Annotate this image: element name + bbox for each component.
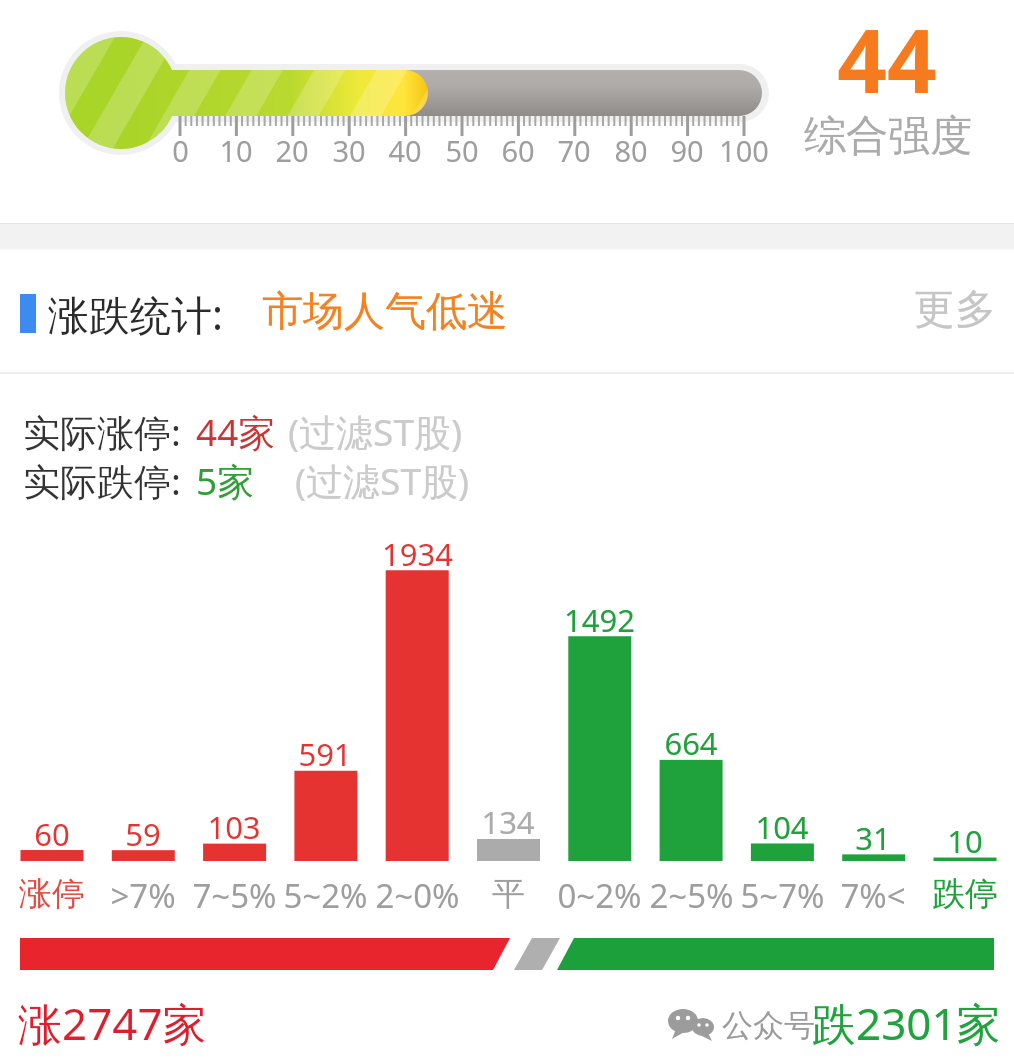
staticText: 70 bbox=[557, 131, 591, 170]
staticText: 5~2% bbox=[283, 873, 368, 918]
staticText: 591 bbox=[298, 733, 352, 775]
staticText: 涨跌统计: bbox=[48, 286, 223, 342]
button[interactable]: 更多 bbox=[905, 280, 1005, 340]
staticText: 更多 bbox=[914, 284, 996, 336]
staticText: 40 bbox=[388, 131, 422, 170]
staticText: 104 bbox=[755, 806, 809, 848]
staticText: 10 bbox=[947, 820, 983, 862]
staticText: (过滤ST股) bbox=[295, 455, 470, 506]
staticText: (过滤ST股) bbox=[288, 406, 463, 457]
staticText: 0 bbox=[172, 131, 189, 170]
staticText: 50 bbox=[445, 131, 479, 170]
staticText: 实际涨停: bbox=[23, 406, 181, 457]
staticText: 30 bbox=[332, 131, 366, 170]
button[interactable] bbox=[807, 8, 967, 218]
staticText: 0~2% bbox=[557, 873, 642, 918]
staticText: 综合强度 bbox=[804, 110, 972, 163]
staticText: 7~5% bbox=[192, 873, 277, 918]
staticText: 涨停 bbox=[19, 873, 85, 915]
staticText: 44 bbox=[837, 0, 937, 118]
staticText: 1934 bbox=[382, 533, 453, 575]
button[interactable] bbox=[0, 285, 900, 340]
staticText: 2~5% bbox=[649, 873, 734, 918]
staticText: 20 bbox=[275, 131, 309, 170]
staticText: 60 bbox=[501, 131, 535, 170]
staticText: 2~0% bbox=[375, 873, 460, 918]
staticText: 100 bbox=[719, 131, 769, 170]
staticText: 10 bbox=[219, 131, 253, 170]
staticText: 80 bbox=[614, 131, 648, 170]
staticText: 跌停 bbox=[932, 873, 998, 915]
staticText: 公众号 bbox=[722, 1006, 815, 1045]
staticText: 134 bbox=[481, 801, 535, 843]
staticText: 涨2747家 bbox=[18, 993, 207, 1053]
staticText: 市场人气低迷 bbox=[262, 286, 508, 338]
staticText: 5~7% bbox=[740, 873, 825, 918]
staticText: 实际跌停: bbox=[23, 455, 181, 506]
staticText: 平 bbox=[492, 873, 525, 915]
staticText: >7% bbox=[110, 873, 176, 918]
staticText: 664 bbox=[664, 722, 718, 764]
staticText: 5家 bbox=[196, 455, 255, 506]
staticText: 44家 bbox=[196, 406, 276, 457]
staticText: 103 bbox=[207, 806, 261, 848]
staticText: 跌2301家 bbox=[812, 993, 1001, 1053]
staticText: 90 bbox=[670, 131, 704, 170]
staticText: 31 bbox=[855, 817, 891, 859]
staticText: 60 bbox=[34, 813, 70, 855]
staticText: 59 bbox=[125, 813, 161, 855]
staticText: 7%< bbox=[840, 873, 906, 918]
staticText: 1492 bbox=[564, 599, 635, 641]
